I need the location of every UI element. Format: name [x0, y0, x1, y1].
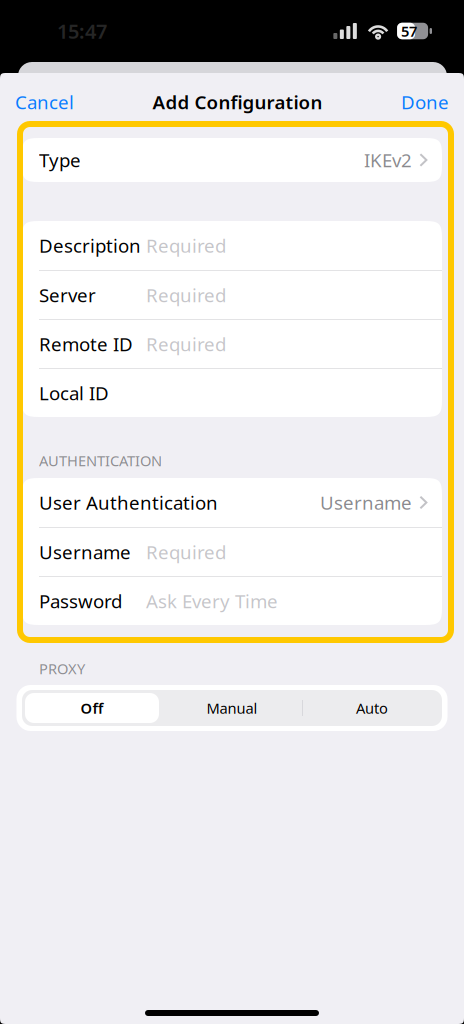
button[interactable]: Type	[22, 138, 442, 182]
staticText: 15:47	[57, 18, 107, 44]
staticText: Type	[39, 148, 81, 172]
staticText: Username	[320, 490, 412, 515]
staticText: Auto	[356, 698, 388, 718]
button[interactable]: Cancel	[9, 82, 80, 122]
button[interactable]: User Authentication	[22, 478, 442, 527]
staticText: Done	[401, 90, 449, 114]
staticText: Required	[146, 233, 226, 258]
button[interactable]: Remote ID	[22, 320, 442, 368]
staticText: Required	[146, 283, 226, 307]
staticText: Local ID	[39, 381, 109, 405]
staticText: 57	[401, 21, 417, 41]
button[interactable]: Server	[22, 271, 442, 319]
button[interactable]: Done	[395, 82, 455, 122]
staticText: Description	[39, 233, 141, 258]
staticText: Server	[39, 283, 96, 307]
button[interactable]: Auto	[302, 690, 442, 726]
button[interactable]: Password	[22, 577, 442, 625]
staticText: IKEv2	[364, 148, 412, 172]
staticText: Required	[146, 332, 226, 356]
staticText: Add Configuration	[152, 90, 322, 114]
button[interactable]: Manual	[162, 690, 302, 726]
staticText: Ask Every Time	[146, 589, 278, 613]
staticText: Manual	[206, 698, 257, 718]
staticText: Password	[39, 589, 122, 613]
staticText: Remote ID	[39, 332, 133, 356]
staticText: Username	[39, 540, 131, 564]
staticText: AUTHENTICATION	[39, 451, 162, 470]
button[interactable]: Off	[22, 690, 162, 726]
staticText: User Authentication	[39, 490, 218, 515]
button[interactable]: Local ID	[22, 369, 442, 417]
button[interactable]: Description	[22, 221, 442, 270]
button[interactable]: Username	[22, 528, 442, 576]
staticText: PROXY	[39, 659, 85, 678]
staticText: Required	[146, 540, 226, 564]
staticText: Off	[80, 698, 103, 718]
staticText: Cancel	[15, 90, 74, 114]
